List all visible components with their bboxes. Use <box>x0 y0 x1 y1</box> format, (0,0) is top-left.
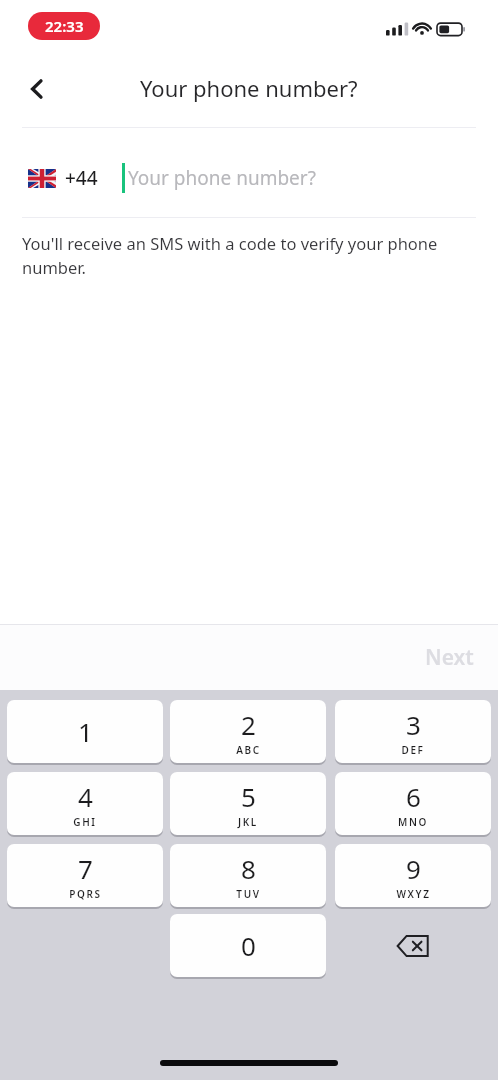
button[interactable]: 7 <box>7 844 163 907</box>
button[interactable]: 0 <box>170 914 326 977</box>
staticText: 1 <box>78 714 93 749</box>
staticText: Your phone number? <box>128 165 316 191</box>
staticText: MNO <box>398 815 428 829</box>
staticText: Next <box>425 643 474 672</box>
staticText: 7 <box>78 851 93 886</box>
button[interactable]: Delete <box>335 914 491 977</box>
button[interactable]: 2 <box>170 700 326 763</box>
button[interactable]: 6 <box>335 772 491 835</box>
staticText: Your phone number? <box>140 73 358 103</box>
staticText: DEF <box>401 743 425 757</box>
button[interactable]: +44 <box>0 150 498 206</box>
staticText: JKL <box>238 815 258 829</box>
button[interactable]: Back <box>14 66 60 112</box>
staticText: +44 <box>65 165 98 191</box>
staticText: 6 <box>406 779 421 814</box>
staticText: PQRS <box>69 887 102 901</box>
button[interactable]: 8 <box>170 844 326 907</box>
button[interactable]: 5 <box>170 772 326 835</box>
staticText: 22:33 <box>45 16 84 36</box>
staticText: 4 <box>78 779 93 814</box>
button[interactable]: 4 <box>7 772 163 835</box>
staticText: 3 <box>406 707 421 742</box>
staticText: 8 <box>241 851 256 886</box>
staticText: WXYZ <box>396 887 431 901</box>
button[interactable]: 3 <box>335 700 491 763</box>
button[interactable]: 9 <box>335 844 491 907</box>
staticText: 0 <box>241 928 256 963</box>
staticText: 5 <box>241 779 256 814</box>
staticText: GHI <box>73 815 97 829</box>
button[interactable]: 1 <box>7 700 163 763</box>
staticText: You'll receive an SMS with a code to ver… <box>22 232 462 279</box>
staticText: 9 <box>406 851 421 886</box>
staticText: ABC <box>236 743 261 757</box>
button[interactable]: Next <box>415 635 484 680</box>
staticText: 2 <box>241 707 256 742</box>
staticText: TUV <box>236 887 261 901</box>
